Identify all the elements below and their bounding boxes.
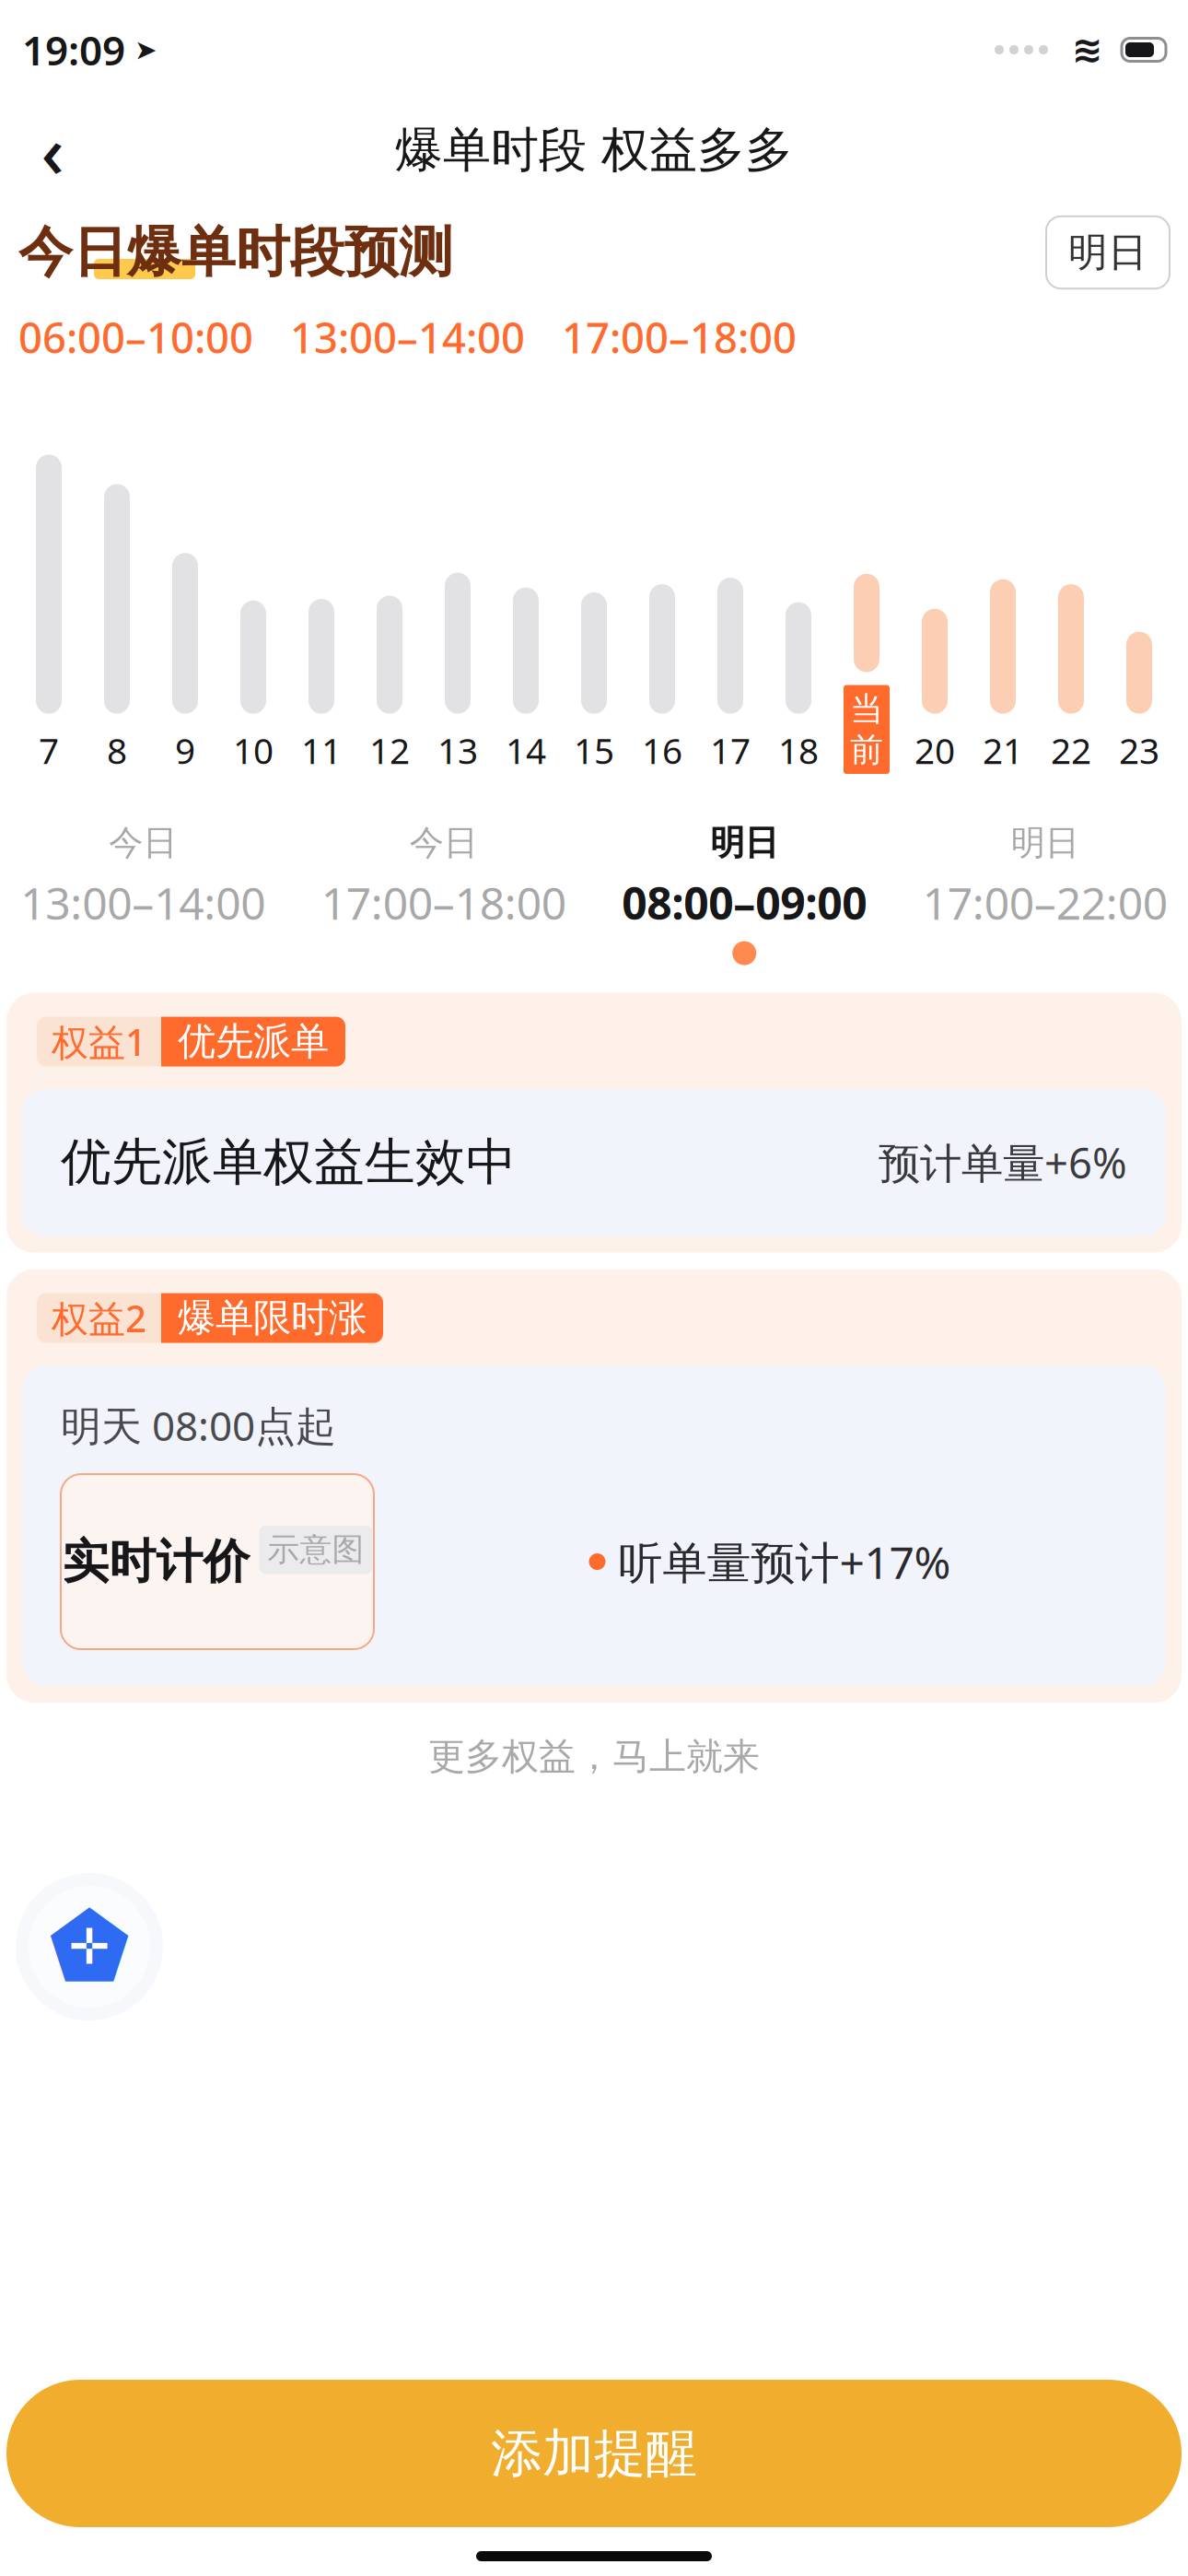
button[interactable]: 安全保障: [11, 1868, 168, 2025]
staticText: 实时计价: [62, 1533, 250, 1590]
staticText: 优先派单: [178, 1018, 329, 1065]
staticText: 18: [778, 727, 819, 774]
button[interactable]: 今日: [293, 822, 594, 965]
staticText: 13:00–14:00: [290, 309, 525, 365]
staticText: 11: [301, 727, 342, 774]
staticText: 19:09: [22, 23, 125, 77]
button[interactable]: 明日: [1046, 216, 1170, 289]
staticText: 明日: [710, 822, 778, 864]
staticText: 今日: [410, 822, 478, 864]
staticText: 16: [642, 727, 682, 774]
staticText: ‹: [41, 103, 64, 198]
staticText: 15: [574, 727, 614, 774]
staticText: ✛: [69, 1919, 110, 1975]
staticText: 今日: [109, 822, 177, 864]
staticText: 20: [914, 727, 955, 774]
staticText: 示意图: [268, 1530, 364, 1569]
staticText: 06:00–10:00: [18, 309, 253, 365]
staticText: 13: [437, 727, 478, 774]
button[interactable]: 明日: [895, 822, 1188, 965]
staticText: 12: [369, 727, 410, 774]
staticText: 更多权益，马上就来: [428, 1734, 760, 1779]
staticText: 预计单量+6%: [879, 1135, 1127, 1190]
button[interactable]: 今日: [0, 822, 293, 965]
staticText: 当前: [850, 689, 883, 770]
staticText: 17: [710, 727, 751, 774]
staticText: 明天 08:00点起: [61, 1398, 336, 1452]
staticText: 听单量预计+17%: [618, 1532, 951, 1591]
button[interactable]: 返回: [13, 111, 92, 190]
staticText: 权益1: [52, 1017, 146, 1066]
staticText: 7: [39, 727, 59, 774]
staticText: 明日: [1011, 822, 1079, 864]
staticText: 添加提醒: [491, 2422, 697, 2485]
staticText: 17:00–18:00: [562, 309, 797, 365]
staticText: 爆单限时涨: [178, 1295, 367, 1341]
staticText: 21: [983, 727, 1023, 774]
staticText: 8: [107, 727, 127, 774]
staticText: 权益2: [52, 1294, 146, 1342]
staticText: 08:00–09:00: [622, 873, 867, 932]
staticText: 明日: [1068, 228, 1147, 277]
staticText: 10: [233, 727, 274, 774]
staticText: 17:00–18:00: [321, 873, 566, 932]
staticText: 22: [1051, 727, 1091, 774]
staticText: 9: [175, 727, 195, 774]
staticText: 今日爆单时段预测: [18, 219, 453, 286]
staticText: ➤: [134, 34, 157, 65]
staticText: 23: [1119, 727, 1159, 774]
staticText: 13:00–14:00: [20, 873, 265, 932]
button[interactable]: 明日: [594, 822, 895, 965]
button[interactable]: 添加提醒: [6, 2380, 1182, 2527]
staticText: ⬟: [49, 1894, 130, 2000]
staticText: 14: [506, 727, 546, 774]
staticText: 17:00–22:00: [923, 873, 1168, 932]
staticText: 优先派单权益生效中: [61, 1131, 517, 1193]
staticText: 爆单时段 权益多多: [395, 121, 793, 180]
staticText: ≋: [1072, 29, 1103, 71]
